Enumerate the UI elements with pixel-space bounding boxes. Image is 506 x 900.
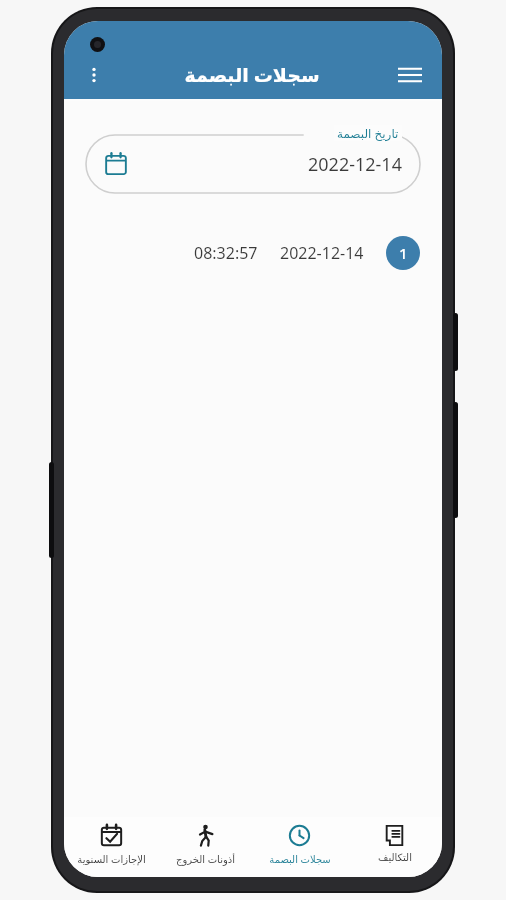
staticText: التكاليف [378, 852, 412, 864]
staticText: الإجازات السنوية [77, 852, 146, 866]
button[interactable]: الإجازات السنوية [64, 817, 158, 877]
staticText: سجلات البصمة [184, 62, 320, 88]
button[interactable]: التكاليف [347, 817, 442, 877]
button[interactable]: أذونات الخروج [158, 817, 252, 877]
staticText: 2022-12-14 [308, 152, 402, 177]
button[interactable]: 08:32:57 [86, 231, 420, 275]
staticText: 2022-12-14 [280, 242, 364, 264]
button[interactable]: سجلات البصمة [252, 817, 347, 877]
staticText: أذونات الخروج [176, 852, 235, 866]
staticText: تاريخ البصمة [337, 125, 399, 141]
staticText: 08:32:57 [194, 242, 258, 264]
staticText: سجلات البصمة [269, 852, 331, 866]
button[interactable]: More options [72, 53, 116, 97]
button[interactable]: Menu [388, 53, 432, 97]
button[interactable]: 2022-12-14 [86, 135, 420, 193]
staticText: 1 [399, 243, 408, 263]
